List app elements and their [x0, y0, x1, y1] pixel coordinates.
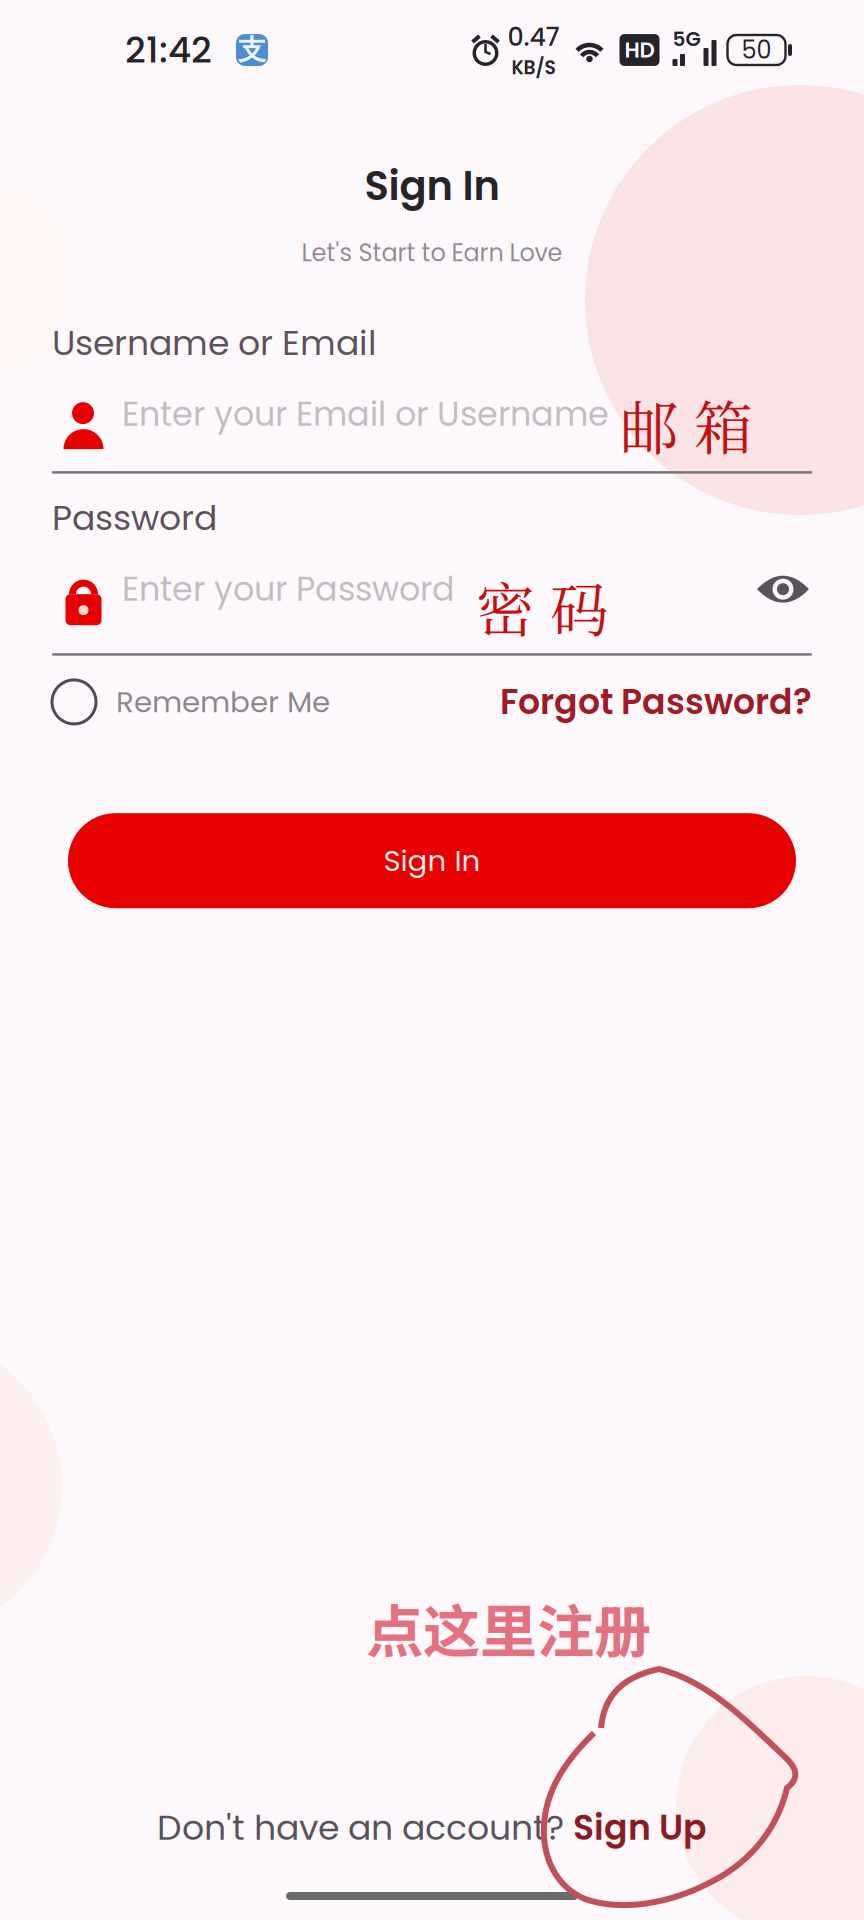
button[interactable]: Forgot Password?: [500, 678, 812, 726]
staticText: 5G: [672, 25, 700, 53]
staticText: 21:42: [125, 25, 212, 75]
staticText: Forgot Password?: [500, 678, 812, 726]
staticText: 50: [741, 33, 771, 67]
staticText: 密 码: [476, 564, 609, 648]
staticText: Sign Up: [573, 1803, 707, 1852]
button[interactable]: Show password: [756, 571, 812, 607]
staticText: Enter your Password: [122, 566, 455, 612]
staticText: Don't have an account?: [157, 1803, 573, 1852]
staticText: Password: [52, 494, 217, 542]
staticText: HD: [624, 35, 654, 65]
staticText: Remember Me: [116, 681, 330, 722]
staticText: Sign In: [383, 840, 480, 881]
staticText: 点这里注册: [366, 1586, 651, 1669]
staticText: Sign In: [364, 158, 499, 214]
staticText: 支: [238, 33, 266, 67]
button[interactable]: Remember Me: [52, 680, 330, 724]
button[interactable]: Sign In: [68, 813, 796, 908]
button[interactable]: Sign Up: [573, 1803, 707, 1852]
staticText: Let's Start to Earn Love: [301, 236, 562, 270]
staticText: 邮 箱: [620, 382, 753, 466]
staticText: Username or Email: [52, 319, 377, 367]
staticText: 0.47: [507, 19, 559, 55]
staticText: KB/S: [511, 55, 555, 81]
staticText: Enter your Email or Username: [122, 391, 609, 437]
